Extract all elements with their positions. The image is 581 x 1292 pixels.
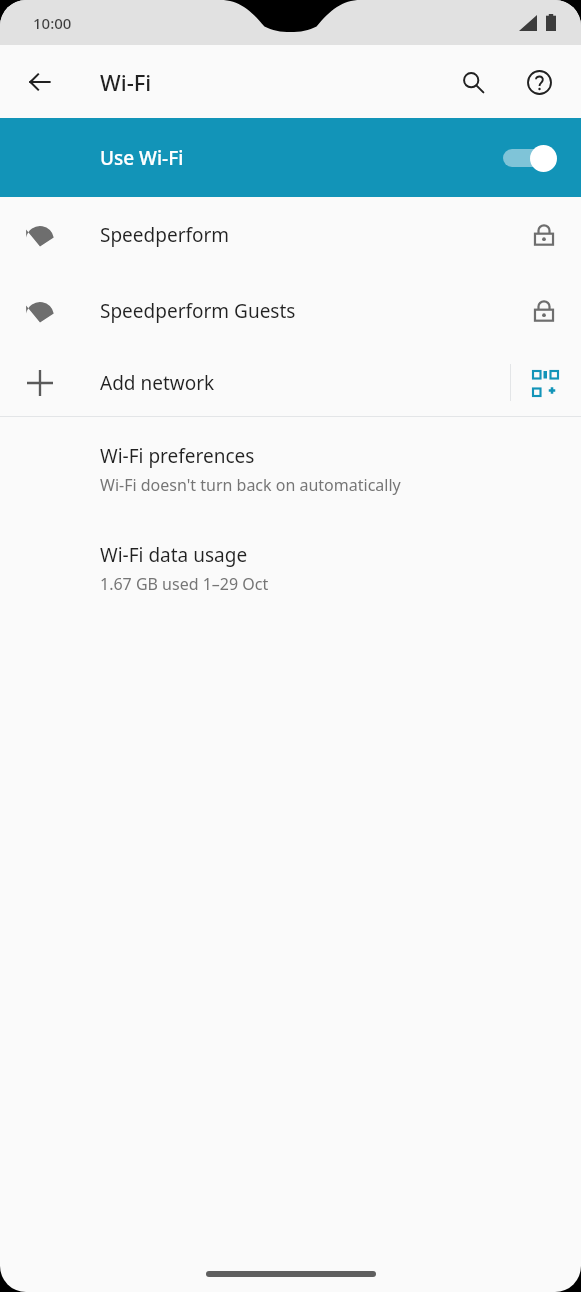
staticText: Add network <box>100 370 215 396</box>
staticText: 10:00 <box>33 13 72 33</box>
staticText: Wi-Fi data usage <box>100 542 248 568</box>
staticText: Speedperform <box>100 222 230 248</box>
button[interactable]: Wi-Fi preferences <box>0 433 581 506</box>
button[interactable]: Back <box>16 58 64 106</box>
staticText: Wi-Fi <box>100 67 152 97</box>
staticText: Wi-Fi doesn't turn back on automatically <box>100 474 401 496</box>
button[interactable]: Speedperform <box>0 197 581 273</box>
button[interactable]: Scan QR code <box>527 365 563 401</box>
button[interactable]: Wi-Fi data usage <box>0 532 581 605</box>
button[interactable]: Search <box>449 58 497 106</box>
button[interactable]: Speedperform Guests <box>0 273 581 349</box>
button[interactable]: Help <box>515 58 563 106</box>
button[interactable]: Use Wi-Fi <box>0 118 581 197</box>
button[interactable]: Add network <box>0 349 581 416</box>
staticText: Use Wi-Fi <box>100 145 184 171</box>
staticText: Speedperform Guests <box>100 298 296 324</box>
staticText: Wi-Fi preferences <box>100 443 255 469</box>
staticText: 1.67 GB used 1–29 Oct <box>100 573 269 595</box>
